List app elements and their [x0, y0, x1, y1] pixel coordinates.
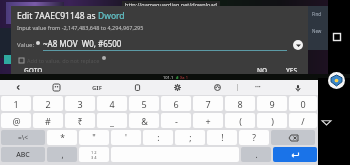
staticText: #	[45, 115, 51, 127]
button[interactable]: Stickers	[197, 80, 237, 95]
button[interactable]: Settings	[157, 80, 197, 95]
button[interactable]: Back	[322, 118, 331, 127]
button[interactable]: 8	[225, 96, 255, 111]
staticText: Edit 7AAEC91148 as	[17, 10, 98, 22]
button[interactable]: "	[79, 130, 109, 145]
staticText: 2	[45, 98, 51, 110]
button[interactable]: 7	[193, 96, 223, 111]
button[interactable]: =\<	[1, 130, 45, 145]
button[interactable]: Recents	[332, 32, 342, 42]
staticText: -	[175, 115, 178, 127]
staticText: ABC	[16, 150, 30, 160]
button[interactable]: 1	[1, 96, 31, 111]
staticText: /	[301, 115, 305, 127]
staticText: ,	[61, 149, 64, 160]
staticText: !	[221, 132, 224, 144]
button[interactable]: 3	[65, 96, 95, 111]
staticText: http://gameguardian.net/download	[125, 1, 217, 8]
button[interactable]: +	[193, 113, 223, 128]
button[interactable]: GameGuardian	[328, 72, 345, 89]
staticText: ₹	[77, 115, 83, 127]
staticText: 0	[300, 98, 306, 110]
staticText: =\<	[18, 133, 28, 142]
staticText: #	[176, 75, 179, 80]
staticText: .	[255, 149, 258, 160]
staticText: 4	[109, 98, 115, 110]
button[interactable]: @	[1, 113, 31, 128]
staticText: NO	[257, 66, 268, 72]
button[interactable]: GOTO	[21, 64, 46, 74]
staticText: 9	[269, 98, 275, 110]
button[interactable]: YES	[281, 64, 302, 74]
button[interactable]: Voice input	[278, 80, 318, 95]
staticText: YES	[286, 66, 297, 72]
button[interactable]: Expand	[293, 40, 303, 50]
staticText: 5	[141, 98, 147, 110]
button[interactable]: Emoji	[36, 80, 77, 95]
staticText: GOTO	[24, 66, 43, 72]
button[interactable]: 9	[257, 96, 287, 111]
staticText: Value:	[17, 41, 35, 49]
button[interactable]: Back	[0, 80, 36, 95]
button[interactable]: Clipboard	[117, 80, 157, 95]
staticText: '	[125, 132, 127, 144]
staticText: 7	[205, 98, 211, 110]
button[interactable]: ;	[175, 130, 205, 145]
staticText: Xa 1	[180, 75, 188, 80]
button[interactable]: 5	[129, 96, 159, 111]
button[interactable]: )	[257, 113, 287, 128]
staticText: )	[271, 115, 274, 127]
button[interactable]: !	[207, 130, 237, 145]
button[interactable]: .	[241, 147, 271, 162]
button[interactable]: :	[143, 130, 173, 145]
staticText: New	[312, 28, 322, 34]
staticText: Dword	[98, 10, 125, 22]
button[interactable]: ABC	[1, 147, 45, 162]
staticText: ~A8 MOV W0, #6500	[43, 38, 122, 49]
staticText: _	[110, 115, 114, 127]
staticText: GIF	[92, 84, 102, 92]
button[interactable]: NO	[252, 64, 273, 74]
staticText: :	[157, 132, 160, 144]
staticText: (	[239, 115, 242, 127]
button[interactable]: &	[129, 113, 159, 128]
button[interactable]	[271, 130, 315, 145]
staticText: 3	[77, 98, 83, 110]
button[interactable]: ?	[239, 130, 269, 145]
button[interactable]: GIF	[77, 80, 117, 95]
button[interactable]: 1 2	[79, 147, 109, 162]
button[interactable]: _	[97, 113, 127, 128]
staticText: Find	[312, 11, 322, 17]
button[interactable]: ,	[47, 147, 77, 162]
button[interactable]: 2	[33, 96, 63, 111]
staticText: 6	[173, 98, 179, 110]
staticText: ;	[189, 132, 192, 144]
button[interactable]: ₹	[65, 113, 95, 128]
button[interactable]: (	[225, 113, 255, 128]
button[interactable]: More	[238, 80, 278, 95]
button[interactable]: 6	[161, 96, 191, 111]
button[interactable]: 0	[289, 96, 317, 111]
staticText: +	[205, 115, 211, 127]
button[interactable]: #	[33, 113, 63, 128]
staticText: Input value from -2,147,483,648 to 4,294…	[17, 24, 144, 31]
staticText: ?	[252, 132, 256, 144]
staticText: "	[92, 132, 96, 144]
button[interactable]: /	[289, 113, 317, 128]
staticText: 8	[237, 98, 243, 110]
button[interactable]	[273, 147, 317, 162]
staticText: 101.1	[163, 75, 174, 80]
staticText: 1 2	[91, 150, 97, 155]
staticText: 3 4	[91, 155, 97, 160]
staticText: •••	[255, 84, 261, 91]
button[interactable]: *	[47, 130, 77, 145]
staticText: &	[141, 115, 148, 127]
staticText: @	[12, 115, 21, 127]
button[interactable]: '	[111, 130, 141, 145]
button[interactable]: 4	[97, 96, 127, 111]
staticText: 1	[13, 98, 19, 110]
button[interactable]: -	[161, 113, 191, 128]
staticText: *	[60, 132, 65, 144]
staticText: Add to value, do not replace	[27, 57, 100, 64]
